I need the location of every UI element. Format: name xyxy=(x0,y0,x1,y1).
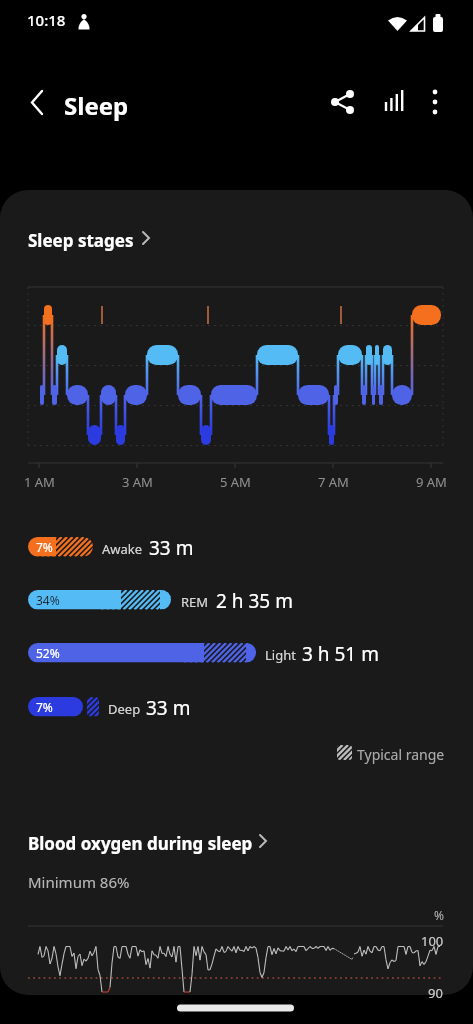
button[interactable] xyxy=(374,82,414,122)
staticText: 7% xyxy=(36,539,53,555)
button[interactable] xyxy=(24,826,284,858)
staticText: % xyxy=(434,907,444,923)
staticText: 52% xyxy=(36,645,60,661)
staticText: 9 AM xyxy=(416,473,447,491)
staticText: 3 h 51 m xyxy=(302,641,379,667)
staticText: Light xyxy=(265,646,296,664)
staticText: Awake xyxy=(102,540,143,558)
staticText: 2 h 35 m xyxy=(216,588,293,614)
staticText: Typical range xyxy=(357,745,445,764)
button[interactable] xyxy=(24,222,174,254)
staticText: 5 AM xyxy=(220,473,251,491)
staticText: Blood oxygen during sleep xyxy=(28,832,253,855)
staticText: 3 AM xyxy=(122,473,153,491)
staticText: 90 xyxy=(428,984,443,1002)
staticText: Deep xyxy=(108,700,141,718)
staticText: 7 AM xyxy=(318,473,349,491)
button[interactable] xyxy=(415,82,455,122)
button[interactable] xyxy=(323,82,363,122)
staticText: 10:18 xyxy=(27,10,66,30)
staticText: 7% xyxy=(36,699,53,715)
staticText: Sleep stages xyxy=(28,229,134,252)
staticText: 33 m xyxy=(146,695,191,721)
staticText: 100 xyxy=(421,932,444,950)
button[interactable] xyxy=(16,83,56,123)
staticText: Minimum 86% xyxy=(28,872,130,892)
staticText: 34% xyxy=(36,592,60,608)
staticText: 1 AM xyxy=(24,473,55,491)
staticText: REM xyxy=(181,593,209,611)
staticText: Sleep xyxy=(64,89,129,122)
staticText: 33 m xyxy=(149,535,194,561)
